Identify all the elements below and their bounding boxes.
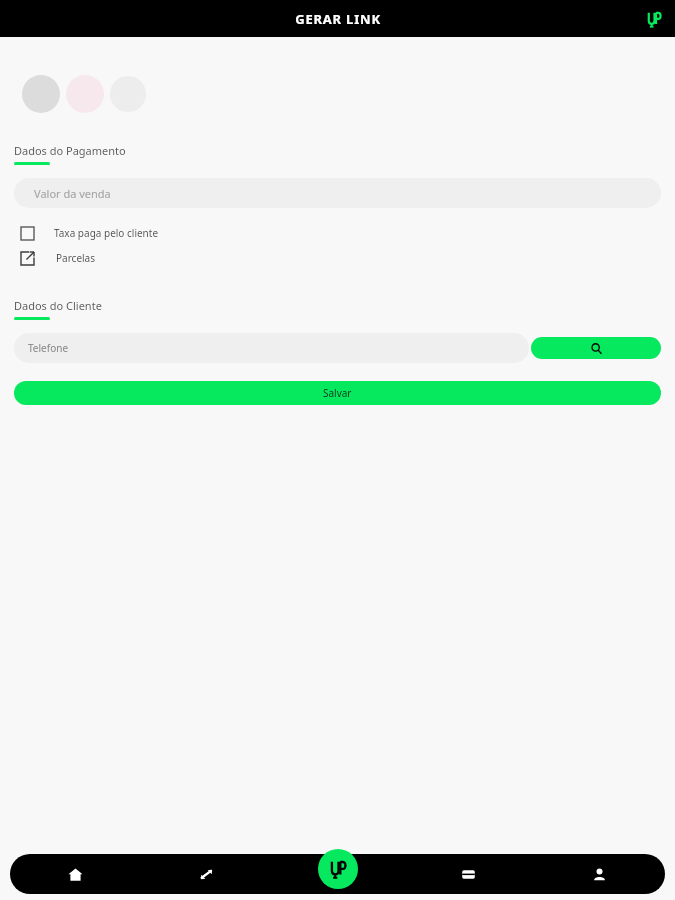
staticText: Salvar xyxy=(323,386,352,400)
button[interactable]: Transferências xyxy=(141,854,272,894)
button[interactable]: Valor da venda xyxy=(14,178,661,208)
button[interactable]: Salvar xyxy=(14,381,661,405)
button[interactable]: Gerar link xyxy=(318,849,358,889)
staticText: Dados do Pagamento xyxy=(14,143,126,158)
button[interactable]: Buscar xyxy=(531,337,661,359)
staticText: Dados do Cliente xyxy=(14,298,102,313)
button[interactable]: Cartões xyxy=(403,854,534,894)
staticText: Parcelas xyxy=(56,251,96,265)
button[interactable]: Logo xyxy=(643,8,665,30)
staticText: GERAR LINK xyxy=(295,10,381,28)
button[interactable]: Perfil xyxy=(534,854,665,894)
staticText: Taxa paga pelo cliente xyxy=(54,226,159,240)
button[interactable]: Parcelas xyxy=(0,246,675,270)
staticText: Telefone xyxy=(28,341,69,355)
button[interactable]: Taxa paga pelo cliente xyxy=(0,221,675,245)
button[interactable]: Telefone xyxy=(14,333,529,363)
button[interactable]: Início xyxy=(10,854,141,894)
staticText: Valor da venda xyxy=(34,186,111,201)
